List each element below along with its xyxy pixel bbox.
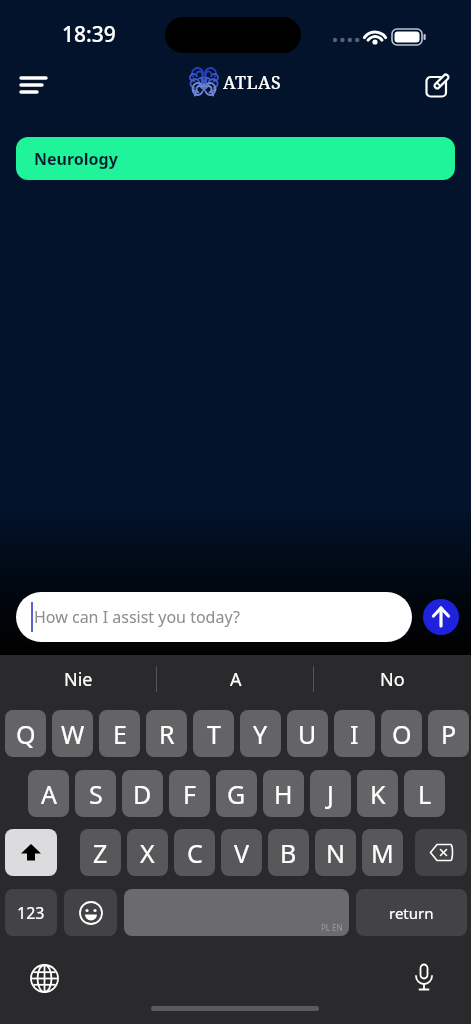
staticText: No (380, 667, 405, 692)
button[interactable]: L (404, 770, 445, 817)
staticText: E (113, 717, 127, 751)
button[interactable]: 123 (5, 889, 57, 936)
staticText: T (207, 717, 221, 751)
staticText: Z (93, 836, 108, 870)
button[interactable]: P (428, 710, 469, 757)
button[interactable]: K (357, 770, 398, 817)
staticText: H (274, 777, 293, 811)
button[interactable]: X (127, 829, 168, 876)
staticText: J (327, 777, 334, 811)
button[interactable]: D (122, 770, 163, 817)
staticText: ATLAS (223, 70, 282, 94)
staticText: Q (16, 717, 36, 751)
staticText: return (389, 903, 434, 923)
button[interactable]: M (362, 829, 403, 876)
button[interactable]: Z (80, 829, 121, 876)
button[interactable]: F (169, 770, 210, 817)
button[interactable] (423, 599, 459, 635)
button[interactable] (417, 65, 457, 105)
staticText: B (280, 836, 297, 870)
staticText: D (133, 777, 152, 811)
staticText: Nie (64, 667, 93, 692)
button[interactable] (24, 958, 64, 998)
button[interactable]: Nie (0, 658, 157, 700)
staticText: C (187, 836, 203, 870)
button[interactable]: A (28, 770, 69, 817)
button[interactable]: T (193, 710, 234, 757)
staticText: R (159, 717, 175, 751)
button[interactable]: PL EN (124, 889, 349, 936)
button[interactable]: No (314, 658, 471, 700)
button[interactable]: U (287, 710, 328, 757)
staticText: P (441, 717, 457, 751)
button[interactable]: H (263, 770, 304, 817)
button[interactable] (64, 889, 117, 936)
button[interactable] (404, 958, 444, 998)
staticText: K (370, 777, 386, 811)
button[interactable]: Y (240, 710, 281, 757)
button[interactable]: How can I assist you today? (16, 592, 412, 642)
staticText: G (227, 777, 246, 811)
staticText: L (418, 777, 432, 811)
button[interactable]: Q (5, 710, 46, 757)
staticText: How can I assist you today? (34, 606, 240, 628)
staticText: N (326, 836, 346, 870)
staticText: O (392, 717, 412, 751)
staticText: Y (253, 717, 268, 751)
button[interactable]: B (268, 829, 309, 876)
button[interactable]: J (310, 770, 351, 817)
button[interactable]: W (52, 710, 93, 757)
staticText: I (350, 717, 359, 751)
staticText: 18:39 (62, 20, 116, 49)
button[interactable]: ATLAS (190, 66, 282, 98)
staticText: X (140, 836, 155, 870)
staticText: A (230, 667, 242, 692)
button[interactable]: A (157, 658, 314, 700)
button[interactable]: S (75, 770, 116, 817)
button[interactable]: C (174, 829, 215, 876)
button[interactable]: R (146, 710, 187, 757)
button[interactable]: E (99, 710, 140, 757)
button[interactable] (12, 65, 56, 105)
button[interactable]: G (216, 770, 257, 817)
button[interactable]: V (221, 829, 262, 876)
button[interactable]: N (315, 829, 356, 876)
staticText: 123 (17, 902, 45, 924)
staticText: A (41, 777, 57, 811)
staticText: V (234, 836, 250, 870)
staticText: Neurology (34, 148, 118, 170)
button[interactable]: Neurology (16, 137, 455, 180)
button[interactable] (5, 829, 57, 876)
button[interactable]: I (334, 710, 375, 757)
staticText: U (298, 717, 317, 751)
staticText: W (61, 717, 85, 751)
staticText: M (371, 836, 394, 870)
staticText: PL EN (321, 922, 343, 933)
staticText: S (89, 777, 103, 811)
button[interactable]: return (356, 889, 467, 936)
button[interactable]: O (381, 710, 422, 757)
button[interactable] (415, 829, 467, 876)
staticText: F (183, 777, 196, 811)
